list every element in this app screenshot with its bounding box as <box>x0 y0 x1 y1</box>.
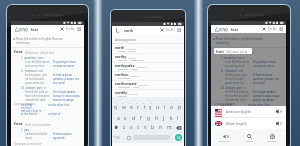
staticText: bottom part <box>26 86 43 90</box>
staticText: face as he stepped <box>25 94 49 98</box>
staticText: q <box>114 104 118 111</box>
staticText: землетр. удар <box>118 67 138 70</box>
button[interactable]: my foot! <box>21 106 84 109</box>
staticText: Я восхищаюсь <box>253 132 272 136</box>
button[interactable] <box>112 71 184 80</box>
staticText: [fʊt] noun, plural feet <box>225 51 254 55</box>
button[interactable]: foot <box>11 25 84 33</box>
button[interactable]: Camera <box>239 129 259 146</box>
staticText: earth <box>115 45 125 50</box>
button[interactable] <box>112 45 184 54</box>
staticText: u <box>156 104 160 111</box>
button[interactable]: British English <box>215 118 282 129</box>
button[interactable]: Search <box>175 134 182 141</box>
button[interactable] <box>112 62 184 71</box>
staticText: [fʊt] verb transitive <box>25 123 51 127</box>
staticText: I admire to fall for <box>225 132 248 136</box>
button[interactable]: Backspace <box>176 126 182 130</box>
staticText: dictionary <box>16 41 30 45</box>
staticText: глиняный гонч. <box>118 85 140 88</box>
button[interactable]: get one's foot in <box>21 109 84 112</box>
staticText: at the foot of <box>21 112 38 115</box>
staticText: n. <box>244 86 247 90</box>
staticText: e <box>130 104 133 111</box>
staticText: outside the door <box>225 98 246 102</box>
staticText: get one's foot in <box>221 109 242 112</box>
staticText: I can feel the warm <box>225 60 250 64</box>
button[interactable]: foot <box>214 48 252 54</box>
staticText: I. <box>221 56 223 60</box>
staticText: En-Ru <box>166 28 175 32</box>
staticText: on a foot <box>21 103 33 106</box>
staticText: Словосочетания <box>14 102 84 106</box>
staticText: z <box>123 124 126 131</box>
staticText: y <box>149 104 152 111</box>
staticText: measure <box>225 69 237 73</box>
staticText: on the other foot <box>248 103 270 106</box>
staticText: foot <box>214 121 223 127</box>
staticText: Show full article in English-Russian <box>216 37 263 41</box>
staticText: — <box>39 112 42 115</box>
button[interactable]: American English <box>215 106 282 117</box>
staticText: foot <box>14 49 23 55</box>
staticText: bottom part <box>226 86 243 90</box>
staticText: земной землистый <box>118 58 144 61</box>
staticText: guess what it is <box>225 81 245 85</box>
staticText: I admire to fall for <box>25 132 48 136</box>
staticText: прилаг. <box>129 92 139 95</box>
staticText: — <box>271 103 274 106</box>
staticText: прилаг. <box>128 56 138 59</box>
staticText: En-Ru <box>66 27 75 31</box>
button[interactable]: at the foot of <box>21 112 84 115</box>
staticText: earthly <box>115 90 128 95</box>
button[interactable]: Emoji <box>127 136 131 140</box>
staticText: I can feel the warm <box>25 60 50 64</box>
button[interactable]: on a foot <box>221 103 286 106</box>
staticText: Autosuggestion <box>115 38 136 42</box>
button[interactable]: Pronounce <box>215 129 235 146</box>
button[interactable]: earth <box>112 26 184 34</box>
staticText: p <box>178 104 182 111</box>
staticText: music <box>225 136 233 140</box>
staticText: m <box>167 124 172 131</box>
staticText: w <box>122 104 126 111</box>
staticText: hit as hard and <box>225 77 244 81</box>
staticText: [fʊt] verb transitive <box>225 123 251 127</box>
button[interactable] <box>112 89 184 98</box>
staticText: III. <box>221 86 225 90</box>
staticText: hit as hard and <box>25 77 44 81</box>
staticText: — <box>33 106 36 109</box>
staticText: n. <box>44 86 47 90</box>
button[interactable]: Translate <box>262 129 282 146</box>
staticText: I. <box>21 56 23 60</box>
staticText: — <box>71 103 74 106</box>
staticText: foot <box>231 27 239 32</box>
staticText: существ. <box>136 65 147 68</box>
staticText: En-Ru <box>268 27 277 31</box>
staticText: guess what it is <box>25 81 45 85</box>
button[interactable]: at the foot of <box>221 112 286 115</box>
staticText: x <box>130 124 133 131</box>
button[interactable]: foot <box>211 25 286 33</box>
button[interactable]: Shift <box>114 125 119 130</box>
staticText: 7 <box>158 102 160 105</box>
staticText: В этой игре вы <box>53 73 73 77</box>
button[interactable]: on a foot <box>21 103 84 106</box>
staticText: anatomy <box>224 56 236 60</box>
button[interactable]: ?123 <box>114 136 120 140</box>
staticText: pay <box>224 128 229 132</box>
staticText: [fʊt] noun, plural feet <box>226 50 252 54</box>
staticText: — <box>239 112 242 115</box>
staticText: f <box>140 115 142 122</box>
staticText: foot <box>31 27 39 32</box>
other: Play pronunciation <box>276 121 282 126</box>
staticText: foot <box>214 49 223 55</box>
staticText: on foot of <box>48 112 61 115</box>
button[interactable] <box>112 54 184 63</box>
staticText: музыкой <box>53 136 65 140</box>
button[interactable]: get one's foot in <box>221 109 286 112</box>
button[interactable] <box>112 80 184 89</box>
staticText: Pronounce <box>219 140 231 143</box>
